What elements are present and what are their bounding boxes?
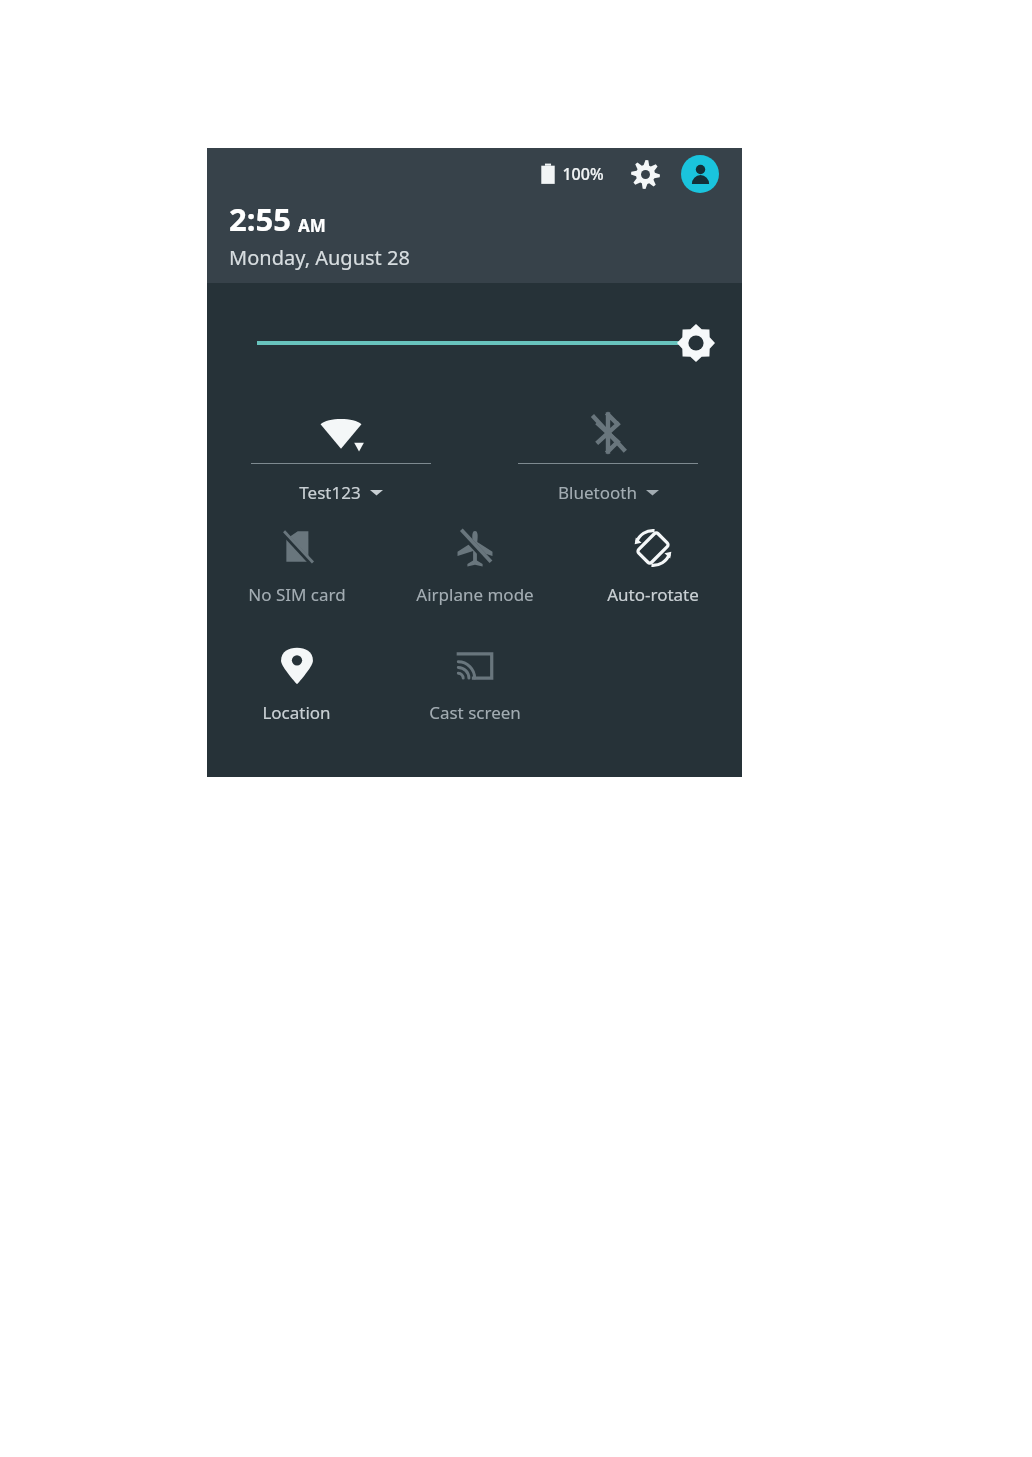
button[interactable]: No SIM card <box>207 517 386 635</box>
button[interactable]: Settings <box>627 156 663 192</box>
staticText: Test123 <box>299 481 361 504</box>
button[interactable]: Brightness <box>207 283 742 395</box>
staticText: 100% <box>562 163 604 185</box>
staticText: Cast screen <box>429 701 521 724</box>
staticText: Location <box>262 701 331 724</box>
staticText: Monday, August 28 <box>229 244 410 271</box>
staticText: No SIM card <box>248 583 346 606</box>
button[interactable]: Test123 <box>207 395 474 517</box>
button[interactable]: User profile <box>681 155 719 193</box>
staticText: AM <box>298 214 326 237</box>
button[interactable]: Location <box>207 635 386 753</box>
staticText: 2:55 <box>229 198 291 240</box>
button[interactable]: Cast screen <box>386 635 564 753</box>
button[interactable]: Auto-rotate <box>564 517 742 635</box>
staticText: Bluetooth <box>558 481 637 504</box>
button[interactable]: Bluetooth <box>474 395 742 517</box>
staticText: Auto-rotate <box>607 583 699 606</box>
button[interactable]: Airplane mode <box>386 517 564 635</box>
staticText: Airplane mode <box>416 583 534 606</box>
